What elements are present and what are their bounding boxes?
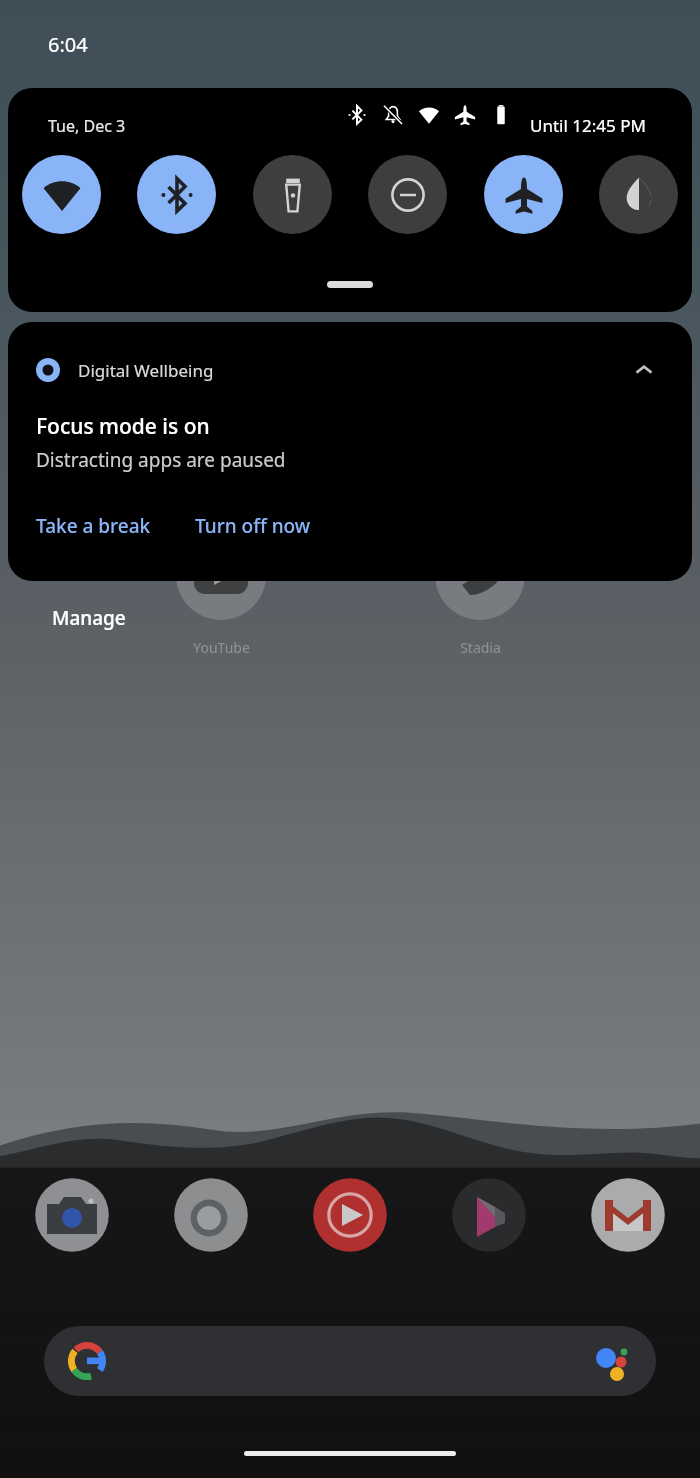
staticText: Digital Wellbeing <box>78 359 214 382</box>
staticText: Manage <box>52 605 126 631</box>
button[interactable] <box>44 1326 656 1396</box>
button[interactable]: Chrome <box>165 1169 257 1261</box>
staticText: Turn off now <box>195 513 311 539</box>
staticText: Distracting apps are paused <box>36 447 286 473</box>
button[interactable]: Take a break <box>36 507 151 545</box>
button[interactable]: Do Not Disturb <box>368 155 447 234</box>
button[interactable]: Airplane mode <box>484 155 563 234</box>
button[interactable]: YouTube Music <box>304 1169 396 1261</box>
staticText: Tue, Dec 3 <box>48 115 126 137</box>
button[interactable]: Manage <box>48 601 130 635</box>
button[interactable]: Wi-Fi <box>22 155 101 234</box>
staticText: 6:04 <box>48 31 88 58</box>
button[interactable]: Camera <box>26 1169 118 1261</box>
staticText: Take a break <box>36 513 151 539</box>
button[interactable]: Digital Wellbeing <box>8 322 692 581</box>
button[interactable]: Turn off now <box>195 507 311 545</box>
staticText: Until 12:45 PM <box>530 114 646 137</box>
button[interactable]: Bluetooth <box>137 155 216 234</box>
staticText: Stadia <box>460 638 501 657</box>
button[interactable]: Gmail <box>582 1169 674 1261</box>
button[interactable]: Flashlight <box>253 155 332 234</box>
button[interactable]: Play Store <box>443 1169 535 1261</box>
staticText: YouTube <box>193 638 250 657</box>
button[interactable]: Collapse <box>624 350 664 390</box>
button[interactable]: Dark theme <box>599 155 678 234</box>
staticText: Focus mode is on <box>36 412 210 441</box>
